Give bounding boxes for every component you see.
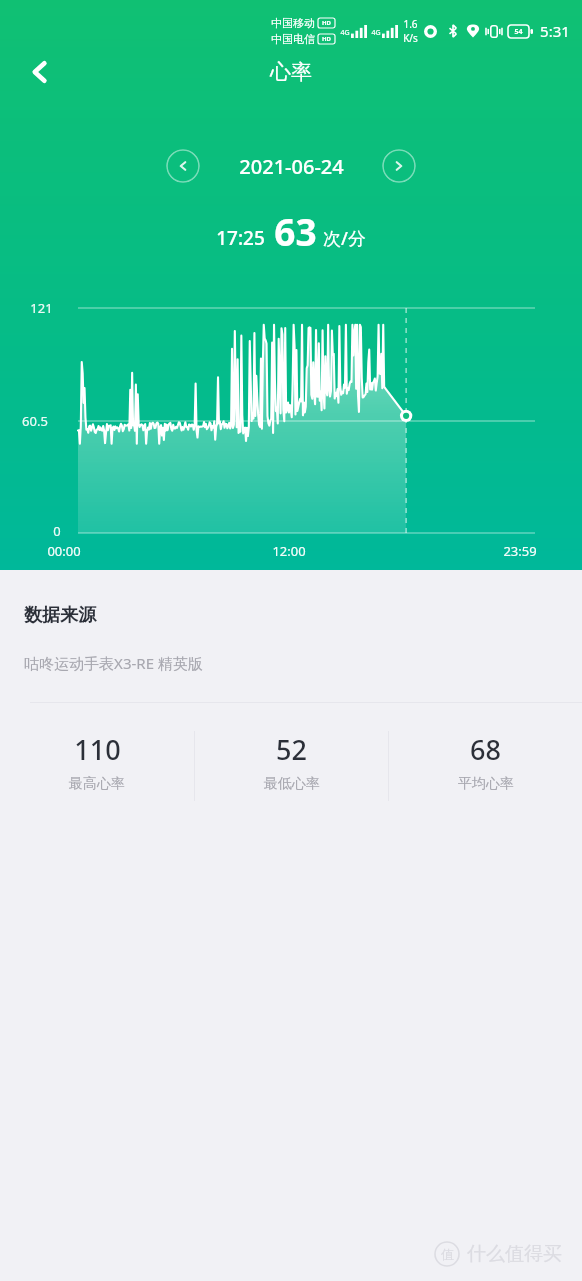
staticText: 2021-06-24 bbox=[239, 153, 344, 180]
button[interactable]: 110 bbox=[0, 731, 194, 793]
staticText: 5:31 bbox=[540, 21, 570, 41]
staticText: HD bbox=[322, 35, 331, 43]
staticText: 4G bbox=[340, 28, 350, 38]
staticText: 平均心率 bbox=[458, 775, 514, 793]
staticText: 1.6 bbox=[403, 17, 418, 31]
button[interactable]: Back bbox=[14, 46, 66, 98]
staticText: 什么值得买 bbox=[467, 1242, 562, 1266]
staticText: 63 bbox=[274, 206, 317, 256]
staticText: K/s bbox=[403, 31, 418, 45]
staticText: 17:25 bbox=[216, 225, 265, 251]
staticText: 0 bbox=[53, 522, 61, 540]
staticText: 值 bbox=[441, 1246, 454, 1262]
staticText: 4G bbox=[371, 28, 381, 38]
staticText: 23:59 bbox=[503, 542, 537, 560]
staticText: 心率 bbox=[270, 59, 312, 85]
staticText: 最低心率 bbox=[264, 775, 320, 793]
button[interactable]: 52 bbox=[195, 731, 388, 793]
staticText: 00:00 bbox=[47, 542, 81, 560]
staticText: 数据来源 bbox=[24, 604, 96, 627]
staticText: 次/分 bbox=[323, 226, 366, 251]
button[interactable]: Previous day bbox=[166, 149, 200, 183]
button[interactable]: 68 bbox=[389, 731, 582, 793]
staticText: 68 bbox=[470, 731, 501, 768]
staticText: 12:00 bbox=[272, 542, 306, 560]
staticText: 52 bbox=[276, 731, 307, 768]
staticText: 110 bbox=[74, 731, 121, 768]
staticText: 中国电信 bbox=[271, 32, 315, 46]
staticText: 最高心率 bbox=[69, 775, 125, 793]
button[interactable]: Next day bbox=[382, 149, 416, 183]
staticText: 中国移动 bbox=[271, 16, 315, 30]
staticText: 121 bbox=[30, 299, 53, 317]
staticText: 60.5 bbox=[22, 412, 48, 430]
staticText: 咕咚运动手表X3-RE 精英版 bbox=[24, 653, 203, 673]
staticText: HD bbox=[322, 19, 331, 27]
staticText: 54 bbox=[514, 27, 523, 37]
